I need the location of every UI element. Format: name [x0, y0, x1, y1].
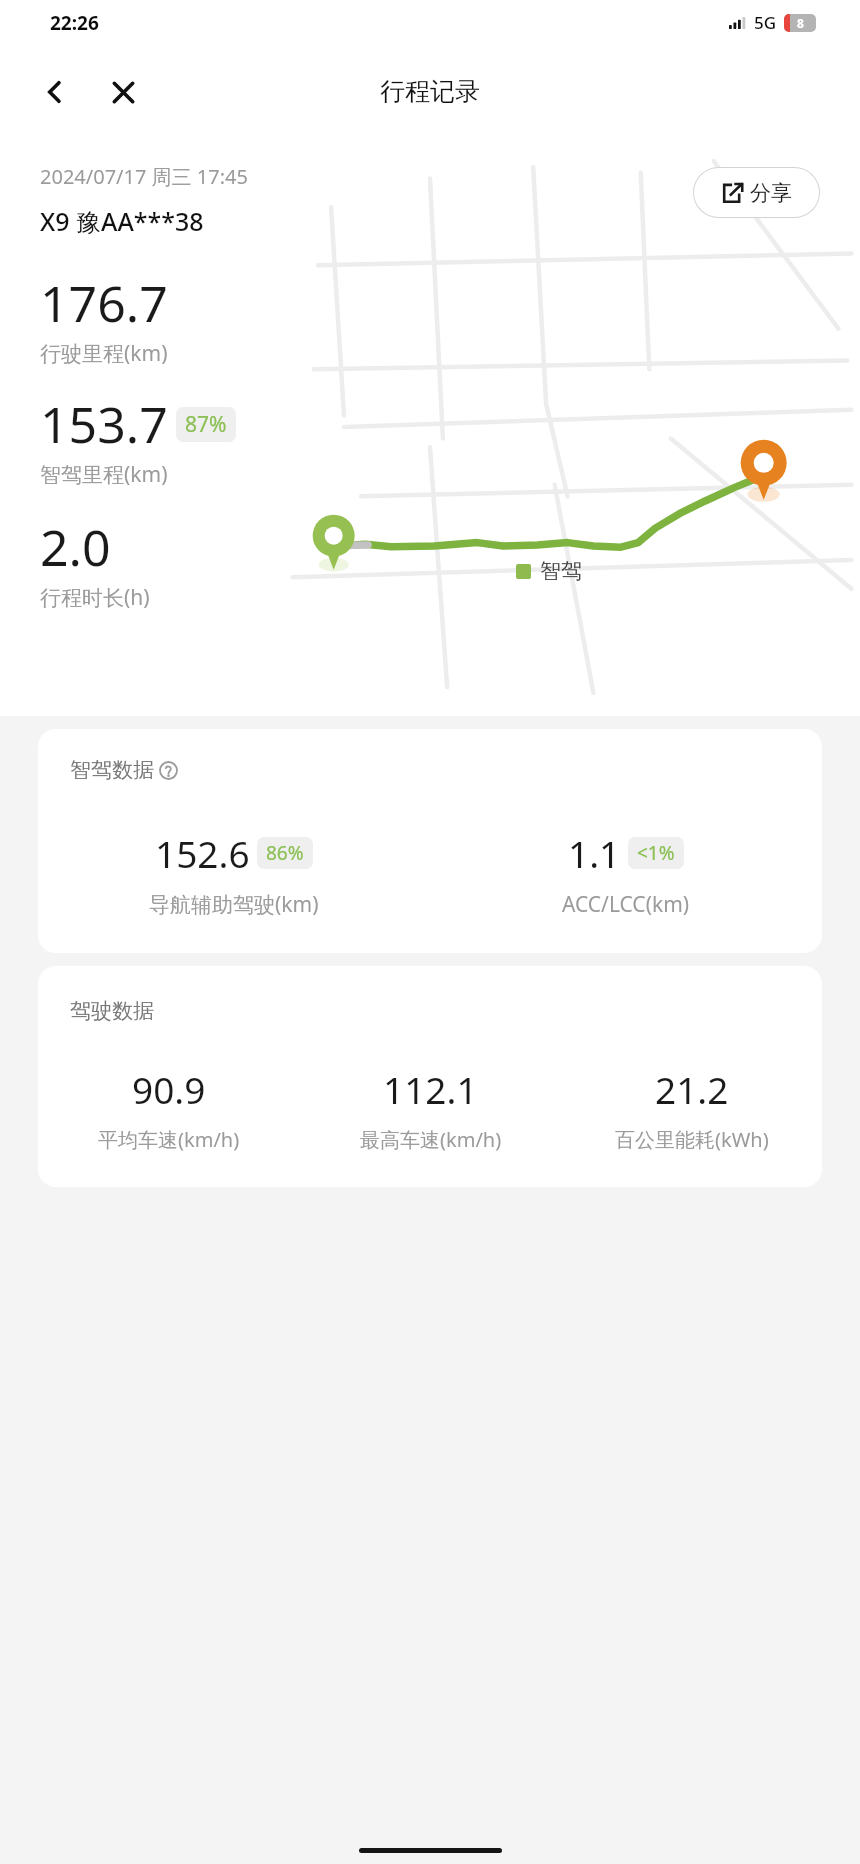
staticText: 112.1 — [383, 1064, 478, 1114]
staticText: 87% — [185, 410, 227, 439]
staticText: 21.2 — [655, 1064, 729, 1114]
staticText: 最高车速(km/h) — [360, 1126, 502, 1153]
staticText: 行程记录 — [380, 76, 480, 107]
button[interactable]: 分享 — [693, 167, 820, 218]
staticText: 90.9 — [132, 1064, 206, 1114]
staticText: 智驾 — [540, 558, 582, 584]
staticText: ACC/LCC(km) — [562, 890, 690, 919]
staticText: 百公里能耗(kWh) — [615, 1126, 769, 1153]
staticText: 152.6 — [155, 828, 250, 878]
staticText: 行驶里程(km) — [40, 339, 168, 368]
button[interactable]: Back — [33, 70, 77, 114]
staticText: 分享 — [750, 180, 792, 206]
staticText: <1% — [637, 840, 675, 866]
staticText: 行程时长(h) — [40, 583, 150, 612]
staticText: 5G — [754, 11, 777, 34]
staticText: 驾驶数据 — [70, 998, 154, 1024]
staticText: 智驾里程(km) — [40, 460, 168, 489]
staticText: 导航辅助驾驶(km) — [149, 890, 319, 919]
staticText: 22:26 — [50, 10, 99, 36]
staticText: 平均车速(km/h) — [98, 1126, 240, 1153]
button[interactable]: Close — [101, 70, 145, 114]
staticText: 176.7 — [40, 269, 168, 337]
staticText: 86% — [266, 840, 304, 866]
staticText: 153.7 — [40, 390, 168, 458]
staticText: 智驾数据 — [70, 757, 154, 783]
staticText: 1.1 — [568, 828, 621, 878]
staticText: 2024/07/17 周三 17:45 — [40, 163, 248, 190]
button[interactable]: Help — [159, 761, 178, 780]
staticText: 8 — [797, 15, 804, 31]
staticText: 2.0 — [40, 513, 111, 581]
staticText: X9 豫AA***38 — [40, 204, 204, 238]
